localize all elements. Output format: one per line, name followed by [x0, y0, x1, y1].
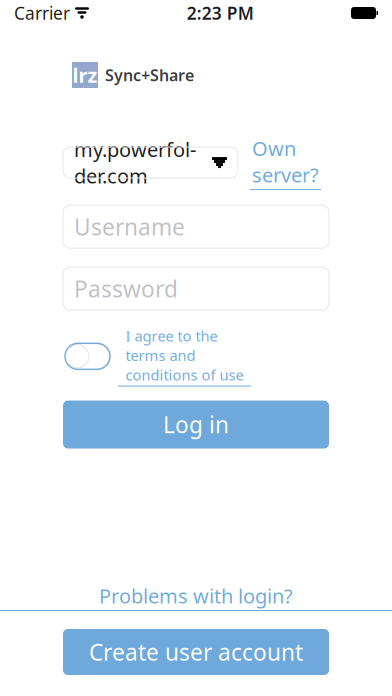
button[interactable]: Own server? — [250, 135, 321, 190]
staticText: Create user account — [89, 637, 303, 667]
button[interactable]: I agree to the terms and conditions of u… — [118, 326, 251, 386]
staticText: Carrier — [14, 1, 70, 24]
staticText: Password — [74, 274, 178, 304]
staticText: Username — [74, 212, 185, 242]
button[interactable]: I agree to the terms and conditions of u… — [65, 343, 110, 369]
staticText: 2:23 PM — [187, 1, 254, 24]
staticText: my.powerfolder.com — [74, 136, 196, 189]
staticText: Sync+Share — [105, 64, 194, 86]
staticText: Own server? — [252, 135, 319, 188]
staticText: Problems with login? — [99, 582, 293, 609]
staticText: lrz — [72, 62, 97, 88]
button[interactable]: my.powerfolder.com — [63, 147, 238, 178]
button[interactable]: Password — [63, 267, 329, 310]
staticText: Log in — [163, 409, 229, 440]
button[interactable]: Create user account — [63, 629, 329, 675]
button[interactable]: Problems with login? — [0, 582, 392, 611]
button[interactable]: Log in — [63, 401, 329, 449]
staticText: I agree to the terms and conditions of u… — [125, 326, 243, 384]
button[interactable]: Username — [63, 205, 329, 248]
